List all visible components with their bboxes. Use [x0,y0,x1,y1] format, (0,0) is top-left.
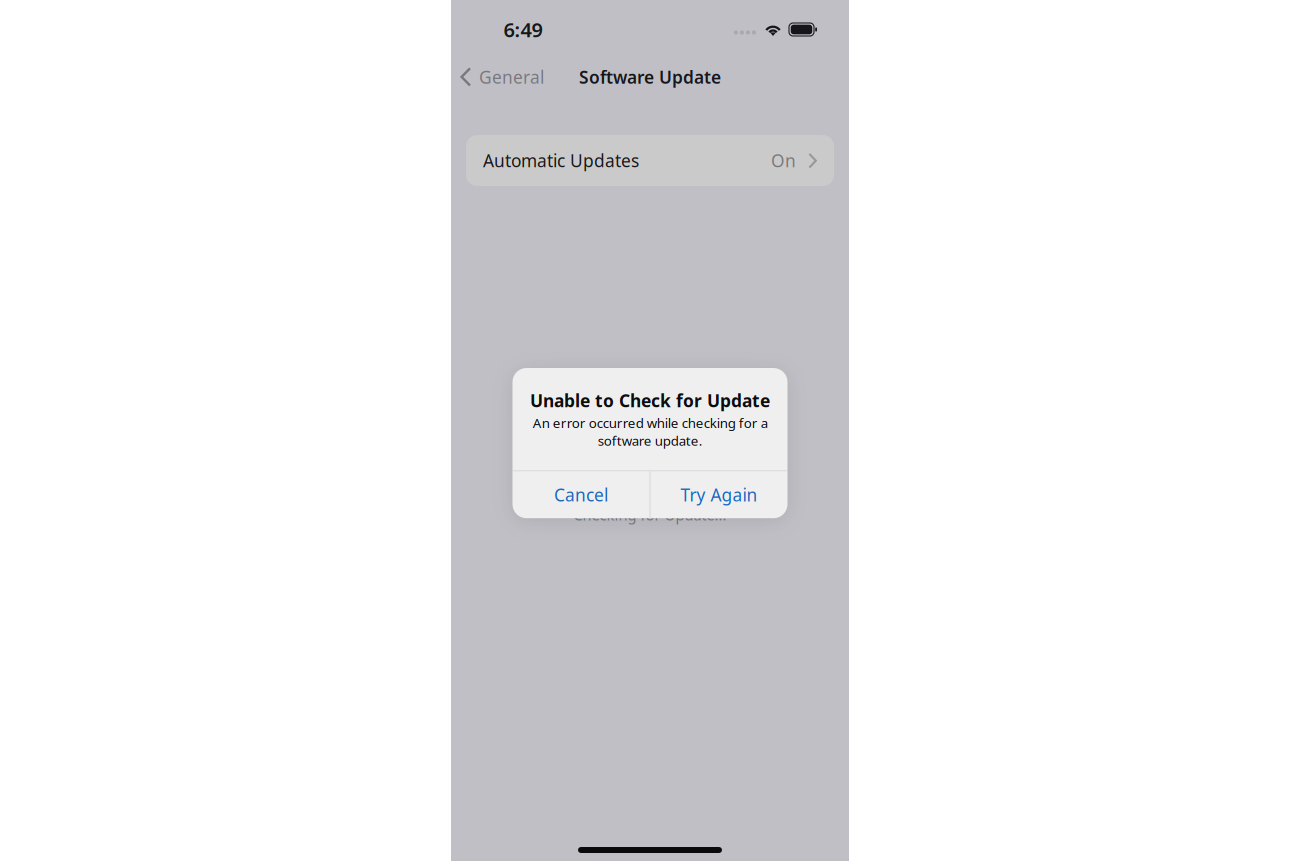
button[interactable]: Back to General [452,59,552,94]
staticText: Software Update [579,65,721,88]
staticText: Cancel [554,483,608,506]
staticText: Unable to Check for Update [530,389,770,412]
button[interactable]: Automatic Updates [466,135,834,186]
staticText: On [771,149,796,172]
button[interactable]: Cancel [512,471,650,518]
staticText: Automatic Updates [483,149,639,172]
staticText: An error occurred while checking for a s… [532,414,767,449]
staticText: Try Again [680,483,757,506]
button[interactable]: Try Again [650,471,787,518]
staticText: General [479,65,544,88]
staticText: Checking for Update... [573,505,726,524]
staticText: 6:49 [503,16,542,43]
